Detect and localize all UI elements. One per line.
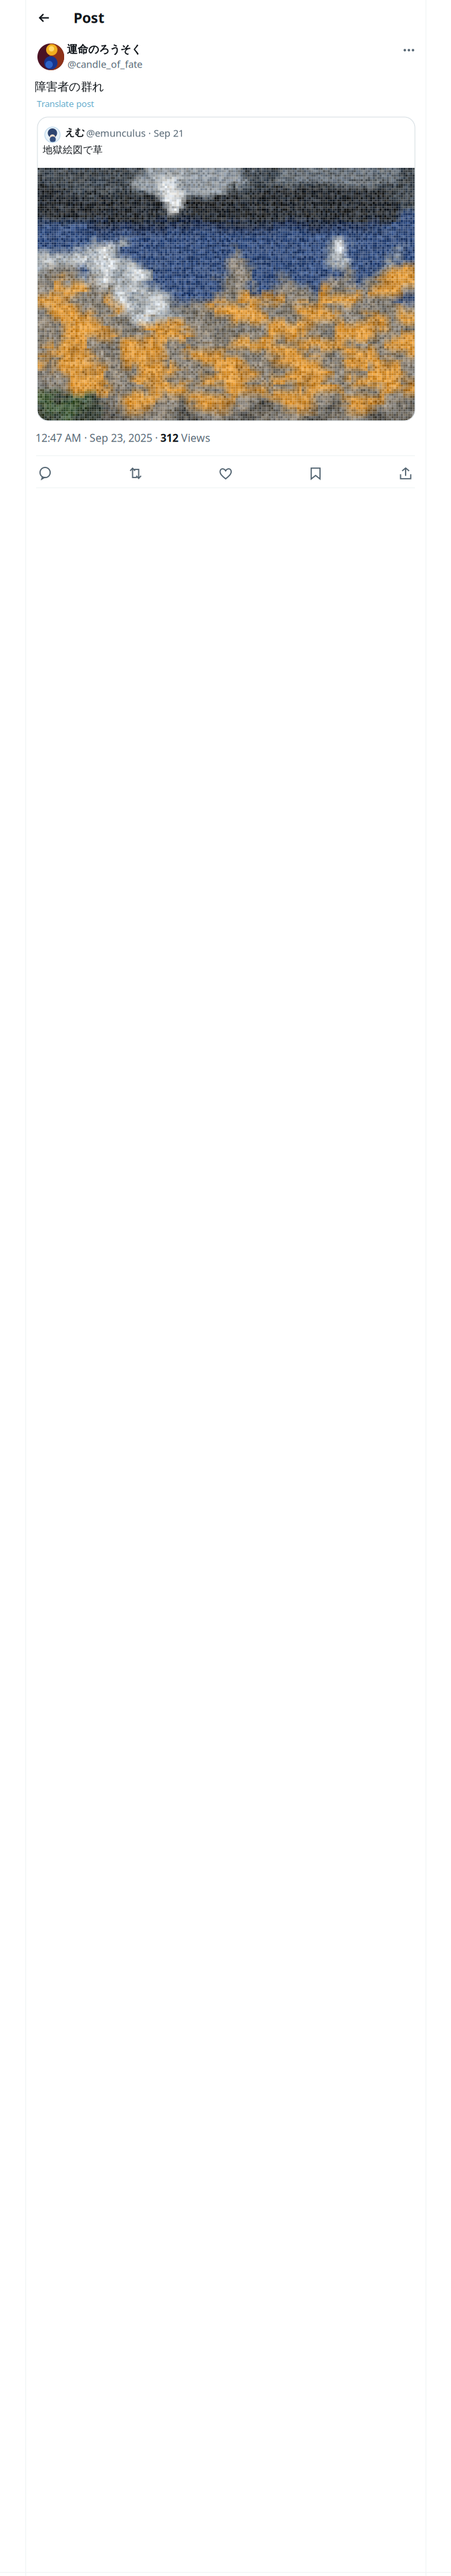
button[interactable]: Translate post — [37, 98, 94, 109]
button[interactable]: Share — [394, 461, 418, 486]
button[interactable]: Like — [213, 461, 238, 486]
staticText: 地獄絵図で草 — [43, 144, 103, 156]
staticText: Post — [73, 8, 104, 27]
staticText: 312 — [160, 431, 178, 445]
staticText: 障害者の群れ — [35, 80, 104, 94]
staticText: えむ — [65, 126, 85, 138]
staticText: Translate post — [37, 98, 94, 109]
staticText: 運命のろうそく — [67, 43, 142, 56]
button[interactable]: Reply — [33, 461, 57, 486]
button[interactable]: Bookmark — [303, 461, 328, 486]
staticText: @emunculus · Sep 21 — [86, 126, 184, 139]
staticText: Views — [178, 431, 210, 445]
button[interactable]: Repost — [123, 461, 148, 486]
staticText: @candle_of_fate — [67, 58, 142, 71]
button[interactable]: More — [398, 39, 421, 60]
staticText: 12:47 AM · Sep 23, 2025 · — [35, 431, 160, 445]
button[interactable]: Back — [33, 5, 58, 31]
